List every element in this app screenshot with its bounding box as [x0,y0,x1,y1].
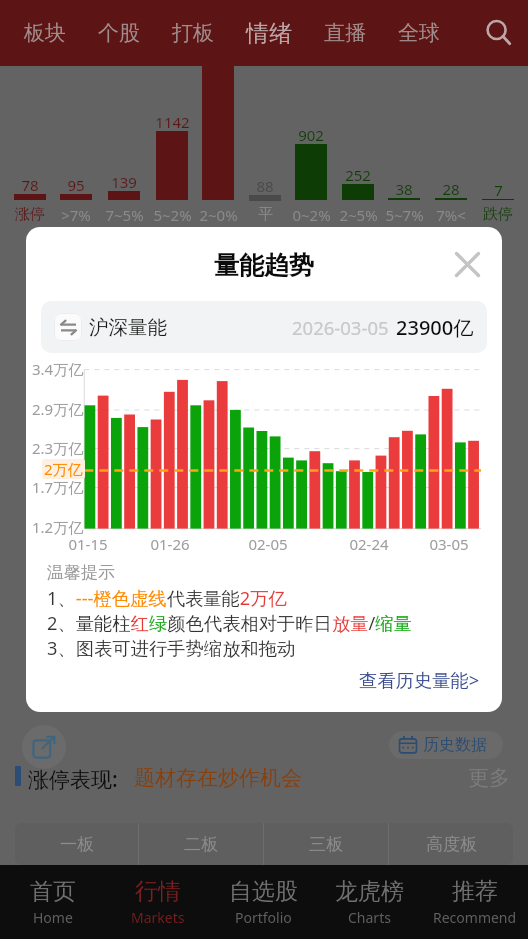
staticText: 题材存在炒作机会 [134,765,302,791]
staticText: 温馨提示 [47,562,115,583]
staticText: 3.4万亿 [32,359,84,379]
staticText: 95 [67,175,85,195]
staticText: 2、量能柱红绿颜色代表相对于昨日放量/缩量 [47,610,412,635]
staticText: 28 [442,179,460,199]
button[interactable]: 首页 [0,865,105,939]
staticText: 推荐 [452,877,498,906]
staticText: 02-24 [349,534,389,554]
staticText: 03-05 [429,534,469,554]
button[interactable]: 自选股 [210,865,316,939]
staticText: Charts [348,908,391,927]
button[interactable]: 行情 [105,865,210,939]
staticText: 139 [111,172,137,192]
staticText: 直播 [324,20,366,46]
staticText: 2万亿 [44,459,83,479]
button[interactable]: Search [476,10,522,56]
staticText: 02-05 [248,534,288,554]
staticText: 情绪 [246,19,292,48]
staticText: 板块 [24,20,66,46]
staticText: 2.3万亿 [32,438,84,458]
staticText: 1、---橙色虚线代表量能2万亿 [47,585,287,610]
staticText: 打板 [172,20,214,46]
staticText: Recommend [433,908,517,927]
staticText: Home [33,908,73,927]
button[interactable]: 个股 [98,20,140,46]
button[interactable]: 推荐 [422,865,528,939]
staticText: 88 [256,176,274,196]
staticText: 平 [258,205,273,224]
staticText: Markets [131,908,185,927]
staticText: 7~5% [105,205,144,225]
staticText: 更多 [468,765,510,791]
button[interactable]: 情绪 [246,19,292,48]
button[interactable]: 查看历史量能> [300,667,480,692]
staticText: 7%< [436,205,466,225]
button[interactable]: 三板 [264,823,388,865]
button[interactable]: Share [22,725,66,769]
staticText: 个股 [98,20,140,46]
staticText: 23900亿 [396,314,474,341]
button[interactable]: 龙虎榜 [316,865,422,939]
staticText: 1142 [155,112,190,132]
staticText: 全球 [398,20,440,46]
button[interactable]: 历史数据 [389,731,503,759]
staticText: Portfolio [235,908,292,927]
button[interactable]: 直播 [324,20,366,46]
button[interactable]: 打板 [172,20,214,46]
staticText: 沪深量能 [89,315,167,340]
staticText: 01-26 [150,534,190,554]
staticText: 历史数据 [423,735,487,755]
staticText: 涨停表现: [28,765,118,794]
staticText: 2~5% [339,205,378,225]
staticText: 行情 [135,877,181,906]
staticText: 自选股 [229,877,298,906]
staticText: 二板 [184,834,218,855]
button[interactable]: 沪深量能 [41,301,487,353]
staticText: 查看历史量能> [359,667,480,692]
button[interactable]: 一板 [15,823,138,865]
staticText: 1.2万亿 [32,517,84,537]
button[interactable]: 二板 [139,823,263,865]
staticText: 2.9万亿 [32,399,84,419]
staticText: 01-15 [68,534,108,554]
staticText: 902 [298,125,324,145]
staticText: 高度板 [426,834,477,855]
staticText: 1.7万亿 [32,477,84,497]
button[interactable]: 板块 [24,20,66,46]
staticText: 一板 [60,834,94,855]
button[interactable]: 全球 [398,20,440,46]
staticText: 38 [395,179,413,199]
staticText: 龙虎榜 [335,877,404,906]
staticText: 0~2% [292,205,331,225]
button[interactable]: 高度板 [389,823,513,865]
staticText: 首页 [30,877,76,906]
staticText: 5~2% [153,205,192,225]
staticText: 三板 [309,834,343,855]
staticText: 2~0% [199,205,238,225]
staticText: 量能趋势 [214,250,314,281]
button[interactable]: Close [446,243,488,285]
staticText: 78 [21,175,39,195]
staticText: 3、图表可进行手势缩放和拖动 [47,635,296,660]
staticText: 5~7% [385,205,424,225]
staticText: 2026-03-05 [292,315,389,340]
staticText: 7 [494,180,503,200]
staticText: 跌停 [483,205,513,224]
staticText: >7% [61,205,91,225]
staticText: 252 [345,165,371,185]
staticText: 涨停 [15,205,45,224]
